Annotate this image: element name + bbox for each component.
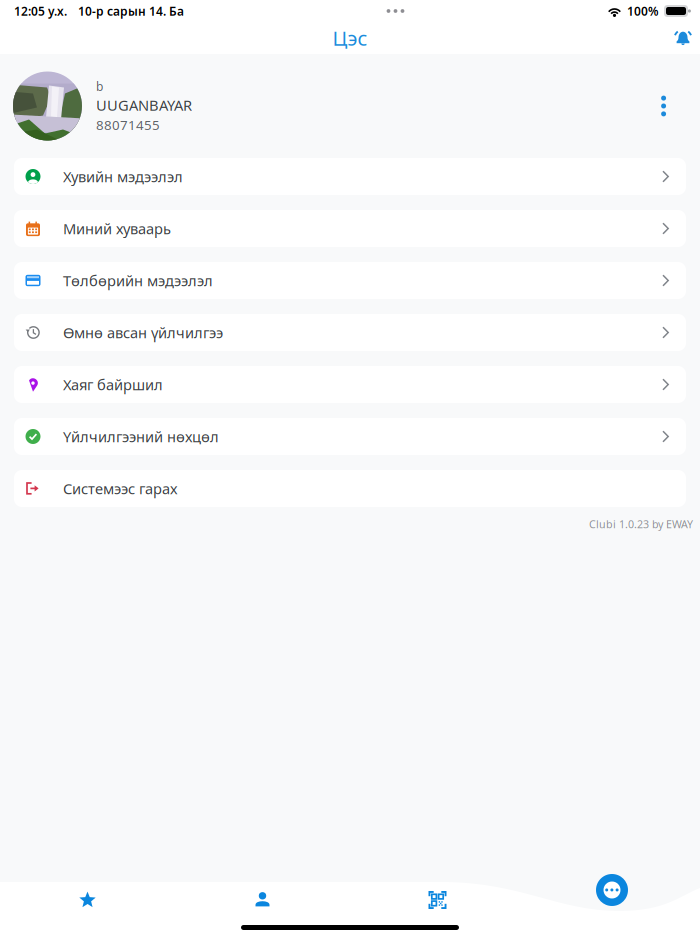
staticText: 10-р сарын 14. Ба [78,3,184,19]
button[interactable]: More options [661,95,683,116]
button[interactable]: Миний хуваарь [14,210,686,247]
staticText: Үйлчилгээний нөхцөл [63,427,219,446]
staticText: 88071455 [96,116,160,134]
button[interactable]: Хувийн мэдээлэл [14,158,686,195]
staticText: Clubi 1.0.23 by EWAY [589,517,693,531]
staticText: Системээс гарах [63,479,177,498]
button[interactable]: Төлбөрийн мэдээлэл [14,262,686,299]
staticText: Миний хуваарь [63,219,171,238]
staticText: b [96,78,103,94]
staticText: Өмнө авсан үйлчилгээ [63,323,223,342]
staticText: 100% [627,3,659,19]
staticText: 12:05 у.х. [14,3,67,19]
button[interactable]: Үйлчилгээний нөхцөл [14,418,686,455]
button[interactable]: Хаяг байршил [14,366,686,403]
staticText: Төлбөрийн мэдээлэл [63,271,213,290]
staticText: Хаяг байршил [63,375,163,394]
button[interactable]: Profile [175,881,350,919]
button[interactable]: Favourites [0,881,175,919]
staticText: Цэс [332,25,367,51]
staticText: UUGANBAYAR [96,95,192,115]
button[interactable]: Системээс гарах [14,470,686,507]
staticText: Хувийн мэдээлэл [63,167,183,186]
button[interactable]: Chat [596,874,628,906]
button[interactable]: Өмнө авсан үйлчилгээ [14,314,686,351]
button[interactable]: Notifications [671,26,695,50]
button[interactable]: Scan QR code [350,881,525,919]
